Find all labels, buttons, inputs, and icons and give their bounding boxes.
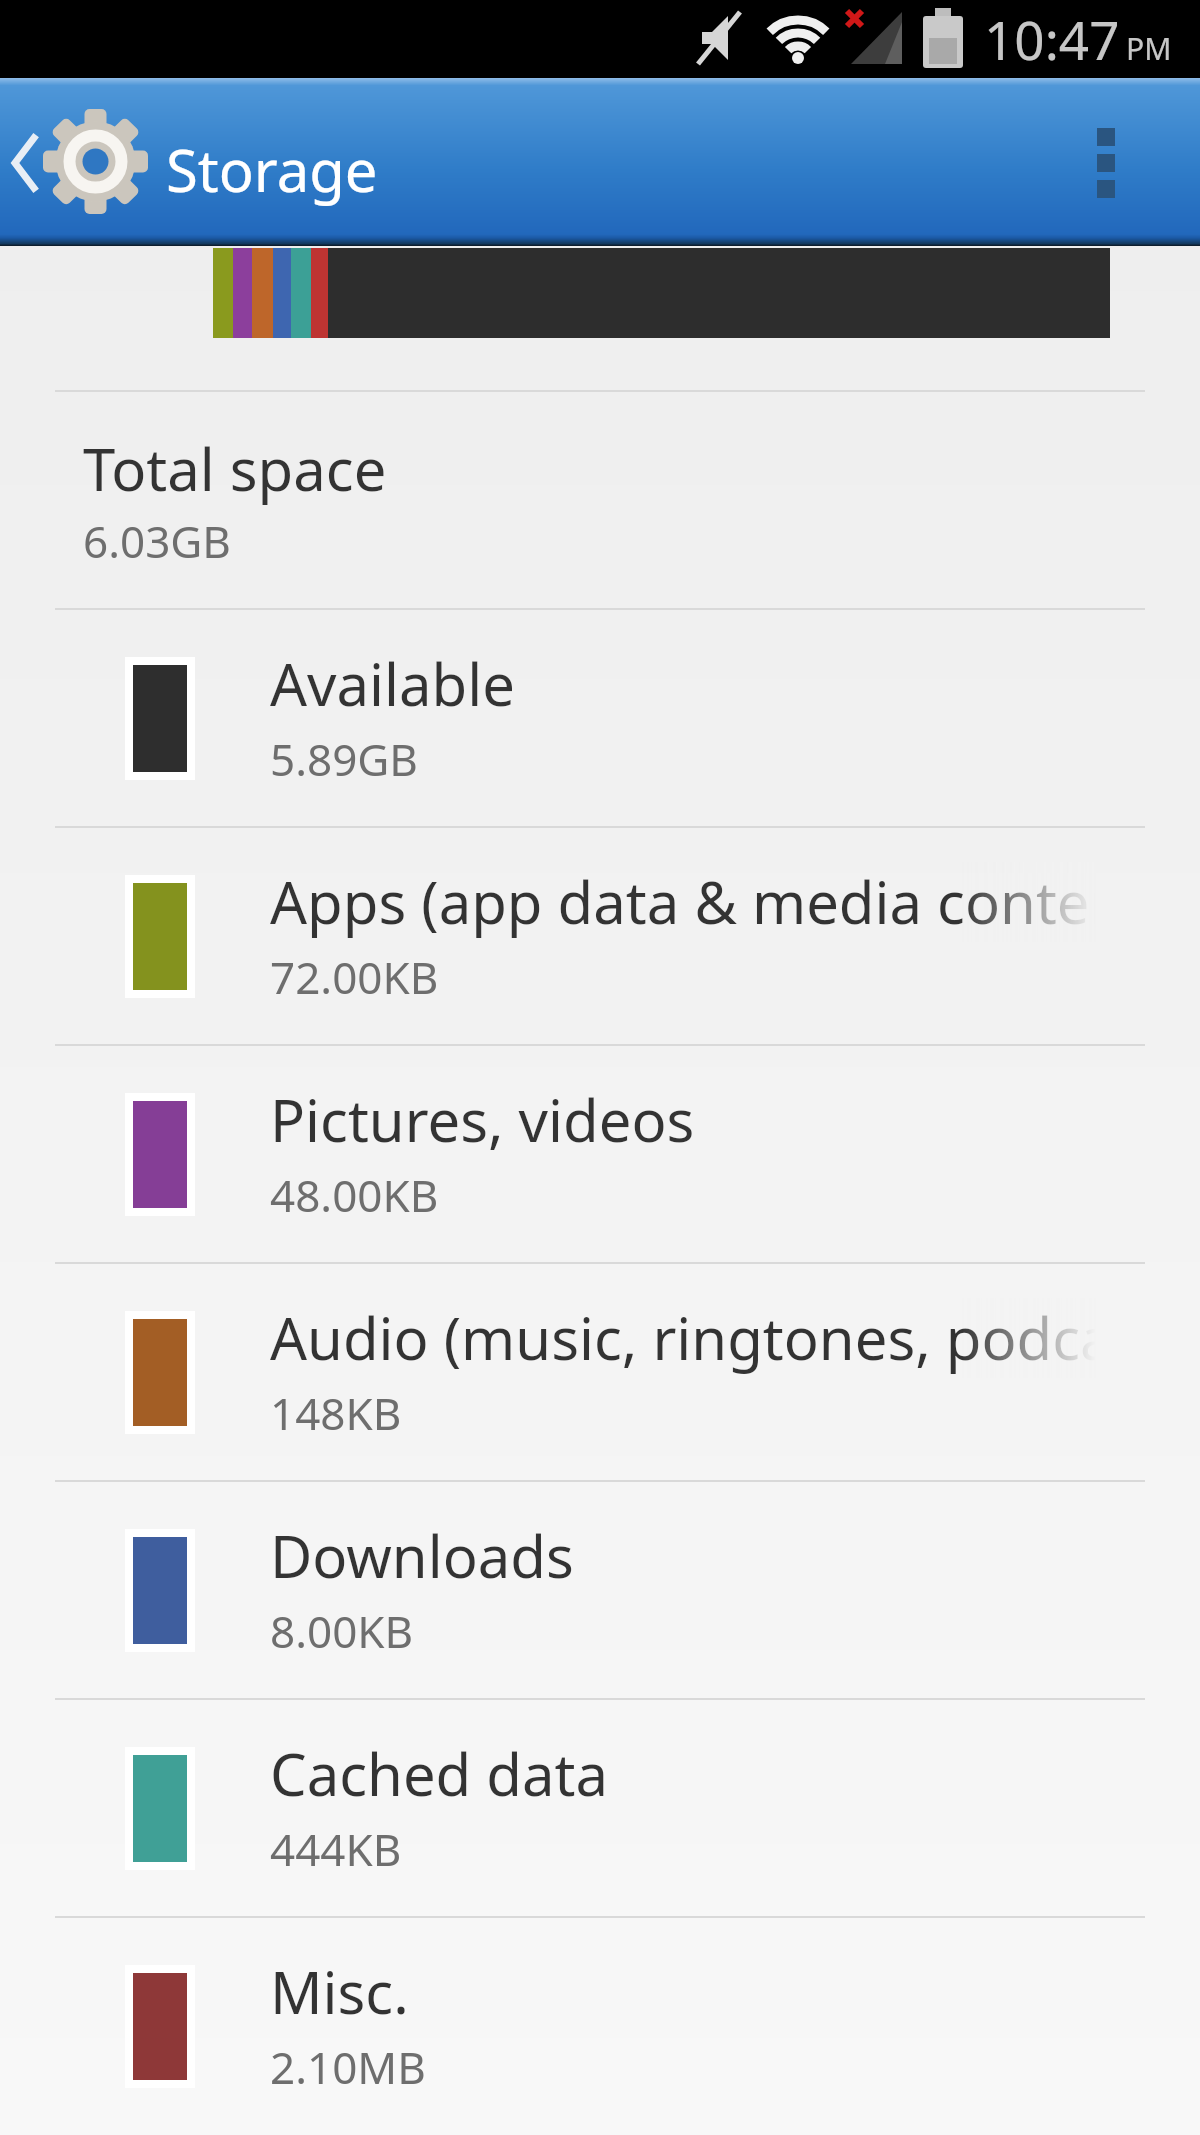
staticText: 72.00KB bbox=[270, 947, 439, 1007]
staticText: Misc. bbox=[270, 1952, 409, 2031]
staticText: 444KB bbox=[270, 1819, 402, 1879]
staticText: 8.00KB bbox=[270, 1601, 414, 1661]
staticText: Downloads bbox=[270, 1516, 574, 1595]
staticText: PM bbox=[1126, 28, 1172, 69]
button[interactable]: Available bbox=[0, 608, 1200, 826]
staticText: 48.00KB bbox=[270, 1165, 439, 1225]
staticText: Pictures, videos bbox=[270, 1080, 695, 1159]
staticText: Available bbox=[270, 644, 515, 723]
staticText: 148KB bbox=[270, 1383, 402, 1443]
button[interactable] bbox=[1097, 128, 1115, 198]
button[interactable]: Downloads bbox=[0, 1480, 1200, 1698]
button[interactable]: Audio (music, ringtones, podcasts) bbox=[0, 1262, 1200, 1480]
staticText: Total space bbox=[83, 429, 387, 508]
button[interactable] bbox=[8, 134, 42, 192]
staticText: Audio (music, ringtones, podcasts) bbox=[270, 1298, 1095, 1377]
staticText: Apps (app data & media content) bbox=[270, 862, 1095, 941]
staticText: 6.03GB bbox=[83, 511, 231, 571]
staticText: 5.89GB bbox=[270, 729, 418, 789]
staticText: 2.10MB bbox=[270, 2037, 426, 2097]
button[interactable]: Cached data bbox=[0, 1698, 1200, 1916]
button[interactable]: Misc. bbox=[0, 1916, 1200, 2134]
staticText: Cached data bbox=[270, 1734, 609, 1813]
button[interactable]: Pictures, videos bbox=[0, 1044, 1200, 1262]
staticText: 10:47 bbox=[984, 3, 1120, 75]
button[interactable]: Apps (app data & media content) bbox=[0, 826, 1200, 1044]
staticText: Storage bbox=[166, 130, 378, 209]
